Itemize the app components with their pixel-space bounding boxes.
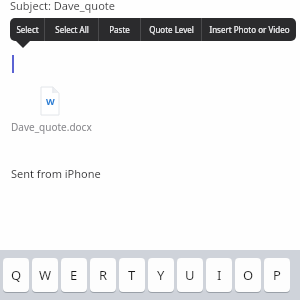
button[interactable]: T <box>119 258 145 292</box>
button[interactable]: U <box>177 258 203 292</box>
button[interactable]: I <box>206 258 232 292</box>
staticText: Y <box>157 266 165 284</box>
button[interactable]: Dave_quote.docx attachment <box>41 87 59 115</box>
staticText: Select All <box>55 24 89 35</box>
button[interactable]: O <box>235 258 261 292</box>
staticText: W <box>39 266 52 284</box>
button[interactable]: P <box>264 258 290 292</box>
staticText: O <box>243 266 254 284</box>
button[interactable]: Select <box>10 18 44 41</box>
staticText: Paste <box>109 24 130 35</box>
staticText: Insert Photo or Video <box>209 24 290 35</box>
staticText: U <box>185 266 195 284</box>
button[interactable]: Paste <box>99 18 140 41</box>
staticText: W <box>46 95 55 107</box>
button[interactable]: Q <box>3 258 29 292</box>
button[interactable]: Insert Photo or Video <box>202 18 296 41</box>
button[interactable]: Quote Level <box>141 18 201 41</box>
button[interactable]: R <box>90 258 116 292</box>
staticText: I <box>217 266 222 284</box>
staticText: Sent from iPhone <box>11 166 101 181</box>
staticText: Q <box>11 266 22 284</box>
staticText: R <box>99 266 108 284</box>
button[interactable]: Select All <box>45 18 98 41</box>
staticText: Dave_quote.docx <box>11 120 92 134</box>
staticText: Select <box>16 24 39 35</box>
button[interactable]: W <box>32 258 58 292</box>
staticText: P <box>273 266 281 284</box>
button[interactable]: Y <box>148 258 174 292</box>
button[interactable]: E <box>61 258 87 292</box>
staticText: Subject: Dave_quote <box>10 0 115 13</box>
staticText: T <box>128 266 136 284</box>
staticText: E <box>70 266 78 284</box>
staticText: Quote Level <box>149 24 194 35</box>
